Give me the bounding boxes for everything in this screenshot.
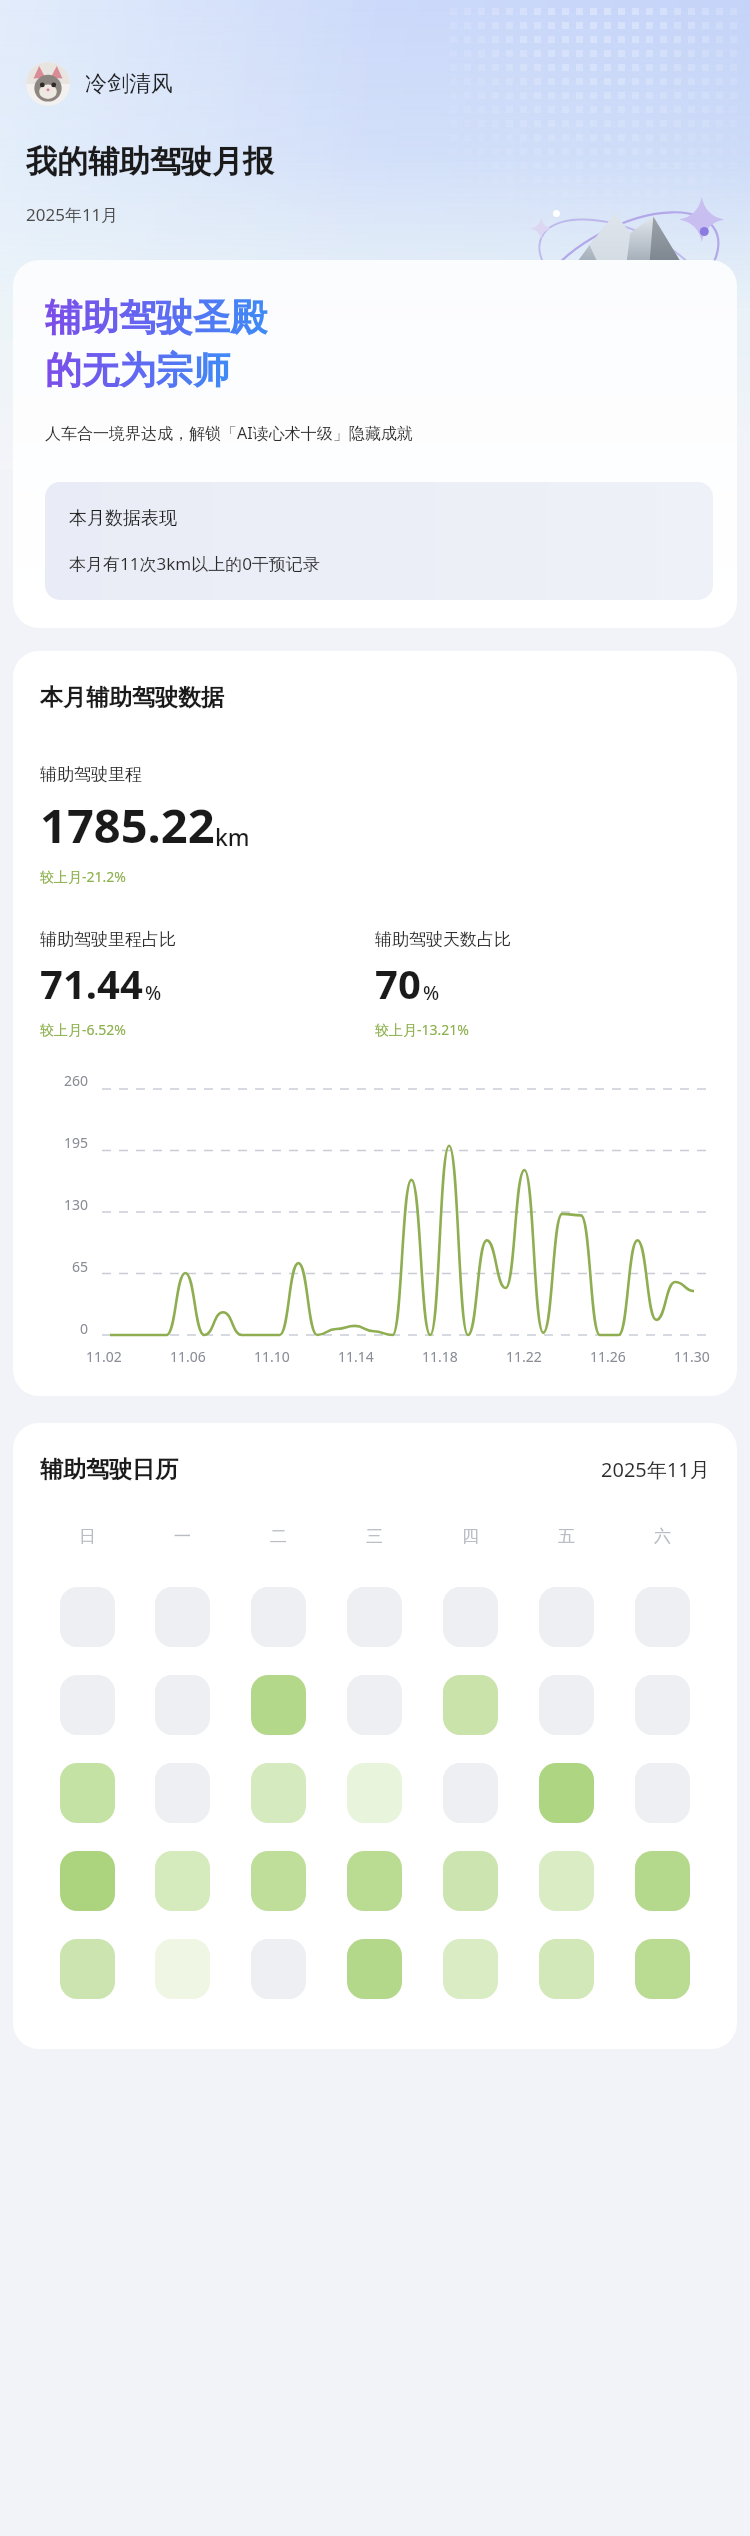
button[interactable]: Day cell (251, 1675, 306, 1735)
button[interactable]: 辅助驾驶里程占比 (40, 929, 375, 1039)
staticText: % (423, 980, 440, 1006)
button[interactable]: Day cell (347, 1939, 402, 1999)
staticText: 较上月-13.21% (375, 1020, 469, 1039)
button[interactable]: 本月数据表现 (45, 482, 713, 600)
staticText: % (145, 980, 162, 1006)
button[interactable]: 辅助驾驶日历 (13, 1423, 737, 2049)
button[interactable]: Day cell (539, 1851, 594, 1911)
staticText: km (215, 821, 250, 852)
staticText: 人车合一境界达成，解锁「AI读心术十级」隐藏成就 (45, 422, 413, 444)
staticText: 11.18 (422, 1347, 458, 1366)
staticText: 1785.22 (40, 793, 215, 857)
button[interactable]: Day cell (635, 1675, 690, 1735)
button[interactable]: Day cell (347, 1587, 402, 1647)
button[interactable]: Day cell (251, 1587, 306, 1647)
button[interactable]: Day cell (60, 1763, 115, 1823)
button[interactable]: 本月辅助驾驶数据 (13, 651, 737, 1396)
staticText: 的无为宗师 (45, 347, 230, 394)
button[interactable]: Day cell (347, 1675, 402, 1735)
staticText: 0 (40, 1319, 88, 1338)
staticText: 本月数据表现 (69, 507, 177, 530)
staticText: 辅助驾驶日历 (40, 1455, 178, 1484)
staticText: 辅助驾驶圣殿 (45, 294, 267, 341)
staticText: 11.22 (506, 1347, 542, 1366)
button[interactable]: Day cell (539, 1939, 594, 1999)
staticText: 71.44 (40, 956, 143, 1010)
button[interactable]: Day cell (443, 1675, 498, 1735)
staticText: 本月辅助驾驶数据 (40, 683, 224, 712)
staticText: 11.10 (254, 1347, 290, 1366)
staticText: 70 (375, 956, 421, 1010)
button[interactable]: Day cell (539, 1587, 594, 1647)
staticText: 辅助驾驶天数占比 (375, 929, 511, 950)
button[interactable]: Day cell (60, 1939, 115, 1999)
staticText: 260 (40, 1071, 88, 1090)
button[interactable]: 辅助驾驶天数占比 (375, 929, 710, 1039)
staticText: 五 (558, 1526, 575, 1547)
staticText: 本月有11次3km以上的0干预记录 (69, 552, 320, 575)
button[interactable]: Avatar (26, 62, 173, 106)
staticText: 11.14 (338, 1347, 374, 1366)
button[interactable]: Day cell (635, 1587, 690, 1647)
staticText: 较上月-21.2% (40, 867, 126, 886)
staticText: 11.06 (170, 1347, 206, 1366)
staticText: 我的辅助驾驶月报 (26, 142, 274, 181)
button[interactable]: Day cell (155, 1939, 210, 1999)
staticText: 一 (174, 1526, 191, 1547)
button[interactable]: Day cell (251, 1763, 306, 1823)
staticText: 辅助驾驶里程占比 (40, 929, 176, 950)
staticText: 65 (40, 1257, 88, 1276)
button[interactable]: Day cell (539, 1763, 594, 1823)
button[interactable]: 辅助驾驶圣殿 (13, 260, 737, 628)
button[interactable]: Day cell (635, 1851, 690, 1911)
staticText: 11.02 (86, 1347, 122, 1366)
button[interactable]: Day cell (347, 1851, 402, 1911)
button[interactable]: Day cell (155, 1851, 210, 1911)
staticText: 较上月-6.52% (40, 1020, 126, 1039)
button[interactable]: Day cell (443, 1763, 498, 1823)
staticText: 11.26 (590, 1347, 626, 1366)
button[interactable]: Day cell (443, 1587, 498, 1647)
button[interactable]: Day cell (60, 1675, 115, 1735)
button[interactable]: Day cell (155, 1763, 210, 1823)
button[interactable]: Day cell (635, 1763, 690, 1823)
staticText: 六 (654, 1526, 671, 1547)
button[interactable]: Day cell (539, 1675, 594, 1735)
button[interactable]: Day cell (443, 1851, 498, 1911)
button[interactable]: Day cell (251, 1939, 306, 1999)
button[interactable]: Day cell (635, 1939, 690, 1999)
staticText: 11.30 (674, 1347, 710, 1366)
staticText: 195 (40, 1133, 88, 1152)
button[interactable]: Day cell (60, 1587, 115, 1647)
staticText: 四 (462, 1526, 479, 1547)
staticText: 辅助驾驶里程 (40, 764, 142, 785)
button[interactable]: Day cell (347, 1763, 402, 1823)
staticText: 冷剑清风 (85, 70, 173, 98)
other: Avatar (26, 62, 70, 106)
staticText: 二 (270, 1526, 287, 1547)
staticText: 2025年11月 (26, 203, 119, 226)
button[interactable]: Day cell (251, 1851, 306, 1911)
staticText: 2025年11月 (601, 1456, 710, 1483)
button[interactable]: Day cell (60, 1851, 115, 1911)
staticText: 三 (366, 1526, 383, 1547)
button[interactable]: Day cell (443, 1939, 498, 1999)
staticText: 日 (79, 1526, 96, 1547)
button[interactable]: Day cell (155, 1587, 210, 1647)
staticText: 130 (40, 1195, 88, 1214)
button[interactable]: Day cell (155, 1675, 210, 1735)
